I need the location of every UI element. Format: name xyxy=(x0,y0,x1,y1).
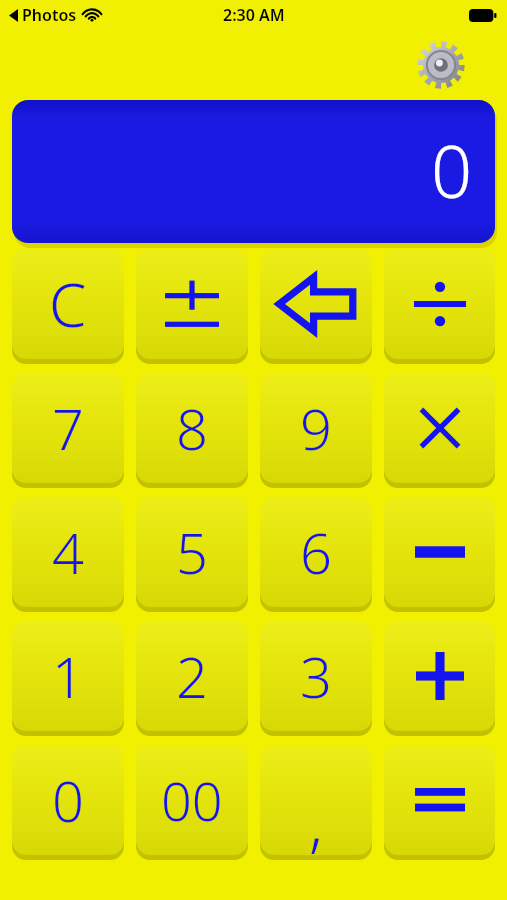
staticText: 1 xyxy=(52,638,84,714)
button[interactable]: Multiply xyxy=(384,373,495,483)
button[interactable]: 0 xyxy=(12,745,124,855)
staticText: 3 xyxy=(300,638,332,714)
staticText: 6 xyxy=(300,514,332,590)
button[interactable]: 00 xyxy=(136,745,248,855)
button[interactable]: 6 xyxy=(260,497,372,607)
button[interactable]: 4 xyxy=(12,497,124,607)
staticText: 0 xyxy=(52,762,84,838)
button[interactable]: Minus xyxy=(384,497,495,607)
button[interactable]: Divide xyxy=(384,249,495,359)
button[interactable]: 8 xyxy=(136,373,248,483)
staticText: 00 xyxy=(161,763,223,837)
button[interactable]: 9 xyxy=(260,373,372,483)
staticText: 9 xyxy=(300,390,332,466)
staticText: 8 xyxy=(176,390,208,466)
staticText: Photos xyxy=(22,4,77,26)
button[interactable]: 2 xyxy=(136,621,248,731)
staticText: 2:30 AM xyxy=(223,4,285,26)
staticText: 0 xyxy=(431,121,473,219)
staticText: 4 xyxy=(52,514,84,590)
staticText: 2 xyxy=(176,638,208,714)
staticText: C xyxy=(49,263,87,345)
button[interactable]: C xyxy=(12,249,124,359)
button[interactable]: 5 xyxy=(136,497,248,607)
button[interactable]: Plus minus xyxy=(136,249,248,359)
button[interactable]: 7 xyxy=(12,373,124,483)
button[interactable]: Backspace xyxy=(260,249,372,359)
button[interactable]: Equals xyxy=(384,745,495,855)
button[interactable]: , xyxy=(260,745,372,855)
button[interactable]: 3 xyxy=(260,621,372,731)
staticText: 5 xyxy=(176,514,208,590)
button[interactable]: 1 xyxy=(12,621,124,731)
button[interactable]: Plus xyxy=(384,621,495,731)
button[interactable]: Settings xyxy=(414,38,468,92)
staticText: 7 xyxy=(52,390,84,466)
staticText: , xyxy=(309,780,323,855)
